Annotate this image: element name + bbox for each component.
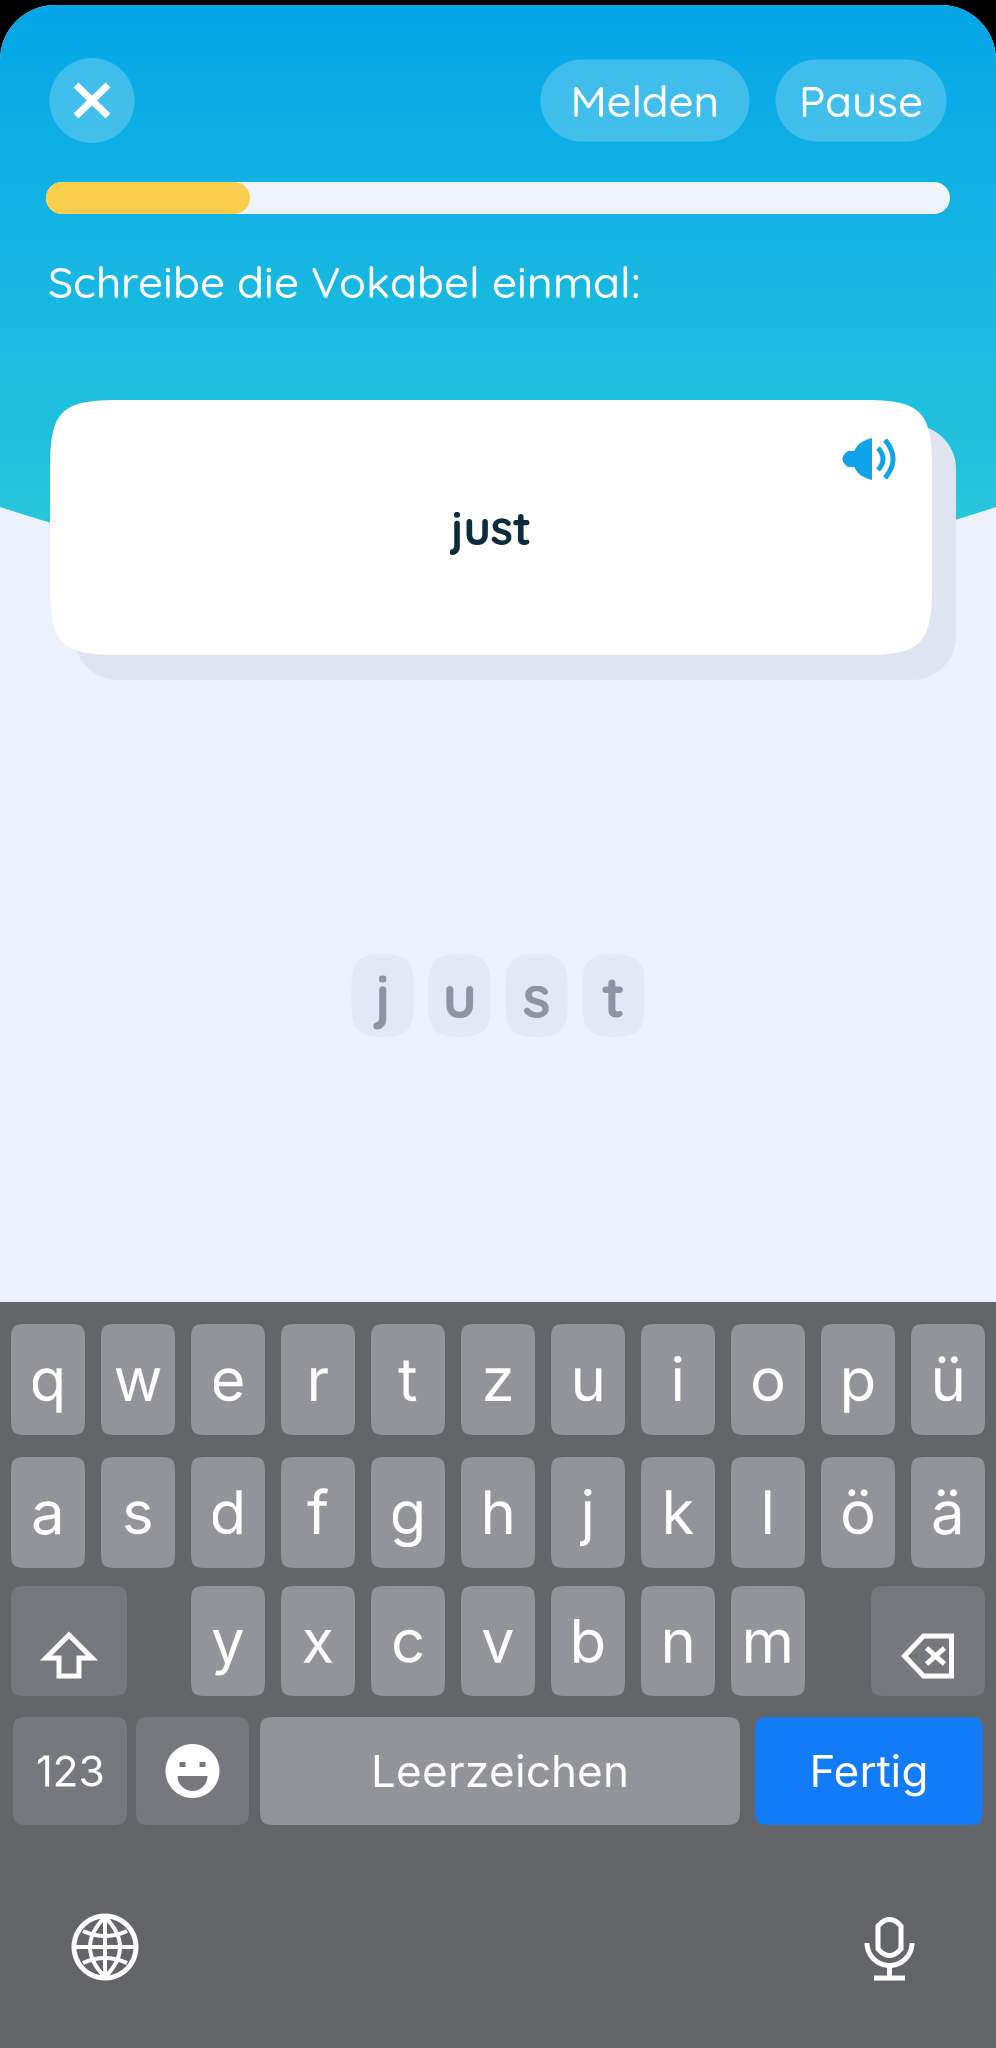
staticText: b <box>569 1605 606 1677</box>
staticText: m <box>741 1605 794 1677</box>
staticText: a <box>31 1476 65 1549</box>
button[interactable]: n <box>641 1586 715 1696</box>
staticText: l <box>760 1476 775 1549</box>
button[interactable]: ü <box>911 1324 985 1435</box>
staticText: r <box>306 1343 329 1416</box>
staticText: z <box>481 1343 514 1416</box>
button[interactable]: e <box>191 1324 265 1435</box>
button[interactable]: x <box>281 1586 355 1696</box>
staticText: o <box>750 1343 786 1416</box>
button[interactable]: Melden <box>540 59 749 141</box>
staticText: u <box>570 1343 605 1416</box>
staticText: c <box>391 1605 425 1677</box>
button[interactable]: Change keyboard <box>74 1916 136 1978</box>
button[interactable]: Leerzeichen <box>260 1717 740 1825</box>
staticText: d <box>209 1476 246 1549</box>
button[interactable]: a <box>11 1457 85 1568</box>
button[interactable]: 123 <box>13 1717 127 1825</box>
button[interactable]: b <box>551 1586 625 1696</box>
staticText: Schreibe die Vokabel einmal: <box>48 254 641 309</box>
button[interactable]: ä <box>911 1457 985 1568</box>
button[interactable]: w <box>101 1324 175 1435</box>
button[interactable]: Fertig <box>755 1717 983 1825</box>
staticText: 123 <box>35 1745 104 1797</box>
staticText: s <box>522 959 550 1032</box>
staticText: u <box>442 959 476 1032</box>
button[interactable]: l <box>731 1457 805 1568</box>
button[interactable]: Pause <box>775 59 946 141</box>
staticText: Leerzeichen <box>371 1744 629 1798</box>
button[interactable]: c <box>371 1586 445 1696</box>
staticText: Pause <box>799 73 923 128</box>
staticText: p <box>839 1343 876 1416</box>
button[interactable]: Delete <box>871 1586 985 1696</box>
button[interactable]: q <box>11 1324 85 1435</box>
button[interactable]: i <box>641 1324 715 1435</box>
staticText: just <box>450 498 531 557</box>
button[interactable]: k <box>641 1457 715 1568</box>
staticText: ö <box>840 1476 876 1549</box>
staticText: x <box>301 1605 334 1677</box>
button[interactable]: f <box>281 1457 355 1568</box>
staticText: w <box>113 1343 162 1416</box>
button[interactable]: g <box>371 1457 445 1568</box>
staticText: t <box>601 959 625 1032</box>
staticText: q <box>29 1343 66 1416</box>
staticText: ü <box>930 1343 965 1416</box>
staticText: Fertig <box>809 1744 928 1798</box>
button[interactable]: v <box>461 1586 535 1696</box>
button[interactable]: ö <box>821 1457 895 1568</box>
staticText: s <box>122 1476 154 1549</box>
staticText: j <box>374 959 390 1032</box>
button[interactable]: h <box>461 1457 535 1568</box>
staticText: j <box>580 1476 595 1549</box>
staticText: f <box>307 1476 329 1549</box>
staticText: y <box>211 1605 245 1677</box>
button[interactable]: u <box>551 1324 625 1435</box>
button[interactable]: y <box>191 1586 265 1696</box>
button[interactable]: t <box>371 1324 445 1435</box>
button[interactable]: p <box>821 1324 895 1435</box>
button[interactable]: s <box>101 1457 175 1568</box>
button[interactable]: Close <box>49 58 134 143</box>
staticText: g <box>389 1476 426 1549</box>
button[interactable]: r <box>281 1324 355 1435</box>
button[interactable]: o <box>731 1324 805 1435</box>
button[interactable]: m <box>731 1586 805 1696</box>
button[interactable]: Emoji <box>136 1717 249 1825</box>
staticText: v <box>481 1605 515 1677</box>
staticText: ä <box>931 1476 965 1549</box>
button[interactable]: d <box>191 1457 265 1568</box>
button[interactable]: Shift <box>11 1586 127 1696</box>
staticText: i <box>670 1343 685 1416</box>
button[interactable]: Dictate <box>867 1912 912 1982</box>
staticText: n <box>660 1605 695 1677</box>
staticText: Melden <box>570 73 719 128</box>
button[interactable]: z <box>461 1324 535 1435</box>
staticText: h <box>480 1476 515 1549</box>
staticText: t <box>398 1343 418 1416</box>
staticText: e <box>210 1343 245 1416</box>
staticText: k <box>661 1476 694 1549</box>
button[interactable]: j <box>551 1457 625 1568</box>
